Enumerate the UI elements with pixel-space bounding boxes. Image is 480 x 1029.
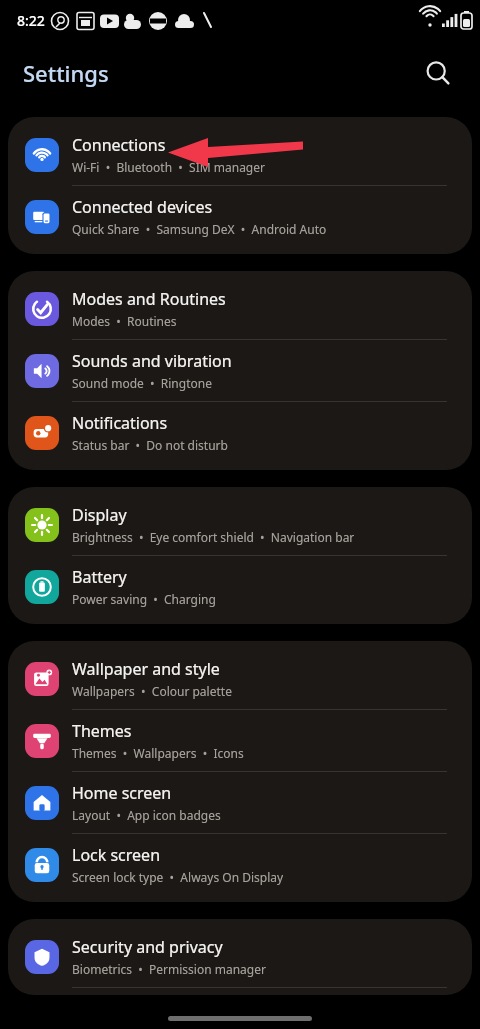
staticText: Themes	[72, 720, 132, 742]
button[interactable]: Search	[416, 51, 460, 95]
staticText: Notifications	[72, 412, 168, 434]
staticText: Home screen	[72, 782, 172, 804]
staticText: Security and privacy	[72, 936, 223, 958]
staticText: Settings	[23, 58, 109, 88]
staticText: Brightness • Eye comfort shield • Naviga…	[72, 529, 355, 545]
staticText: Wallpaper and style	[72, 658, 220, 680]
staticText: Screen lock type • Always On Display	[72, 869, 284, 885]
staticText: Themes • Wallpapers • Icons	[72, 745, 244, 761]
staticText: Layout • App icon badges	[72, 807, 221, 823]
staticText: Modes and Routines	[72, 288, 226, 310]
button[interactable]: Home screen	[8, 772, 472, 833]
staticText: Connections	[72, 134, 166, 156]
button[interactable]: Connected devices	[8, 186, 472, 247]
button[interactable]: Connections	[8, 124, 472, 185]
staticText: Wallpapers • Colour palette	[72, 683, 232, 699]
staticText: Modes • Routines	[72, 313, 177, 329]
staticText: Biometrics • Permission manager	[72, 961, 266, 977]
staticText: Sound mode • Ringtone	[72, 375, 212, 391]
staticText: 8:22	[17, 11, 45, 30]
button[interactable]: Display	[8, 494, 472, 555]
button[interactable]: Wallpaper and style	[8, 648, 472, 709]
button[interactable]: Battery	[8, 556, 472, 617]
button[interactable]: Themes	[8, 710, 472, 771]
button[interactable]: Sounds and vibration	[8, 340, 472, 401]
staticText: Status bar • Do not disturb	[72, 437, 228, 453]
button[interactable]: Security and privacy	[8, 926, 472, 987]
staticText: Display	[72, 504, 127, 526]
staticText: Power saving • Charging	[72, 591, 216, 607]
staticText: Wi-Fi • Bluetooth • SIM manager	[72, 159, 265, 175]
staticText: Connected devices	[72, 196, 213, 218]
button[interactable]: Lock screen	[8, 834, 472, 895]
button[interactable]: Modes and Routines	[8, 278, 472, 339]
button[interactable]: Notifications	[8, 402, 472, 463]
staticText: Lock screen	[72, 844, 161, 866]
staticText: Sounds and vibration	[72, 350, 232, 372]
staticText: Quick Share • Samsung DeX • Android Auto	[72, 221, 327, 237]
staticText: Battery	[72, 566, 127, 588]
